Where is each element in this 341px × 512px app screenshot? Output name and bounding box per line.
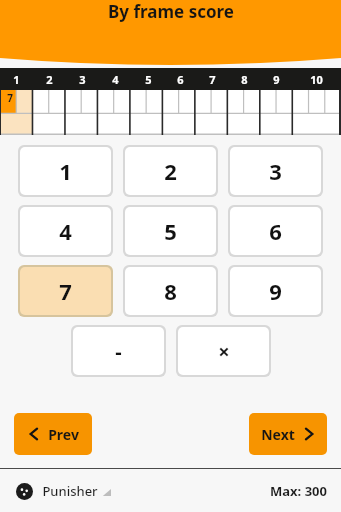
staticText: 3 [269, 156, 282, 186]
button[interactable]: Punisher [16, 482, 111, 500]
staticText: 5 [164, 216, 177, 246]
staticText: 1 [13, 72, 20, 87]
staticText: Punisher [42, 482, 98, 500]
staticText: 4 [112, 72, 119, 87]
staticText: 9 [269, 276, 282, 306]
button[interactable]: - [73, 327, 164, 375]
button[interactable]: 6 [230, 207, 321, 255]
button[interactable]: × [178, 327, 269, 375]
staticText: 9 [273, 72, 280, 87]
staticText: 3 [79, 72, 86, 87]
button[interactable]: 8 [125, 267, 216, 315]
staticText: 6 [177, 72, 184, 87]
staticText: 6 [269, 216, 282, 246]
staticText: 10 [310, 72, 323, 87]
staticText: 4 [59, 216, 72, 246]
staticText: Max: 300 [270, 482, 327, 500]
staticText: × [218, 338, 230, 365]
staticText: 2 [164, 156, 177, 186]
staticText: 8 [241, 72, 248, 87]
staticText: 7 [7, 91, 13, 105]
button[interactable]: 1 [20, 147, 111, 195]
staticText: Next [261, 425, 295, 444]
button[interactable]: 5 [125, 207, 216, 255]
staticText: Prev [48, 425, 79, 444]
staticText: 2 [46, 72, 53, 87]
button[interactable]: Next [249, 413, 327, 455]
staticText: 1 [59, 156, 72, 186]
button[interactable]: Prev [14, 413, 92, 455]
staticText: 7 [209, 72, 216, 87]
button[interactable]: 3 [230, 147, 321, 195]
staticText: 7 [59, 276, 72, 306]
button[interactable]: 2 [125, 147, 216, 195]
button[interactable]: 7 [20, 267, 111, 315]
staticText: - [115, 338, 122, 365]
staticText: 8 [164, 276, 177, 306]
button[interactable]: 9 [230, 267, 321, 315]
button[interactable]: 4 [20, 207, 111, 255]
staticText: 5 [145, 72, 152, 87]
staticText: By frame score [108, 0, 234, 23]
